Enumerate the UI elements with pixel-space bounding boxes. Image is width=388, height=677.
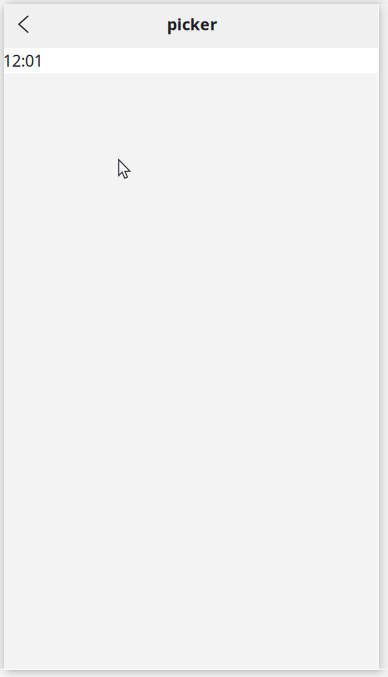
- staticText: picker: [167, 13, 217, 35]
- staticText: 12:01: [3, 50, 43, 71]
- button[interactable]: 12:01: [4, 48, 378, 73]
- button[interactable]: Back: [4, 4, 48, 48]
